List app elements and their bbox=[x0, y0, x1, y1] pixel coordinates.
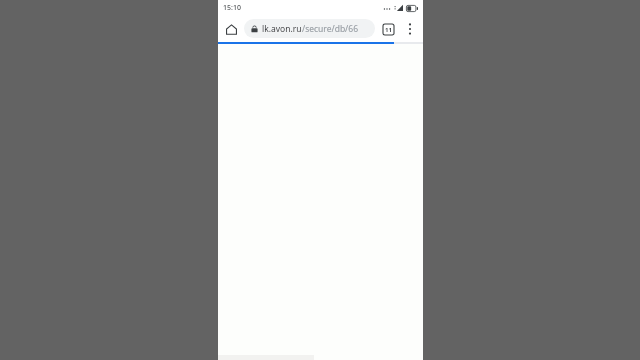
staticText: 15:10 bbox=[223, 3, 241, 13]
staticText: lk.avon.ru bbox=[262, 23, 302, 35]
staticText: 11 bbox=[385, 26, 392, 34]
button[interactable]: Home bbox=[220, 18, 242, 40]
staticText: /secure/db/66 bbox=[302, 23, 358, 35]
button[interactable]: More options bbox=[399, 18, 421, 40]
button[interactable]: lk.avon.ru bbox=[244, 19, 375, 38]
button[interactable]: Switch tabs, 11 open bbox=[377, 18, 399, 40]
